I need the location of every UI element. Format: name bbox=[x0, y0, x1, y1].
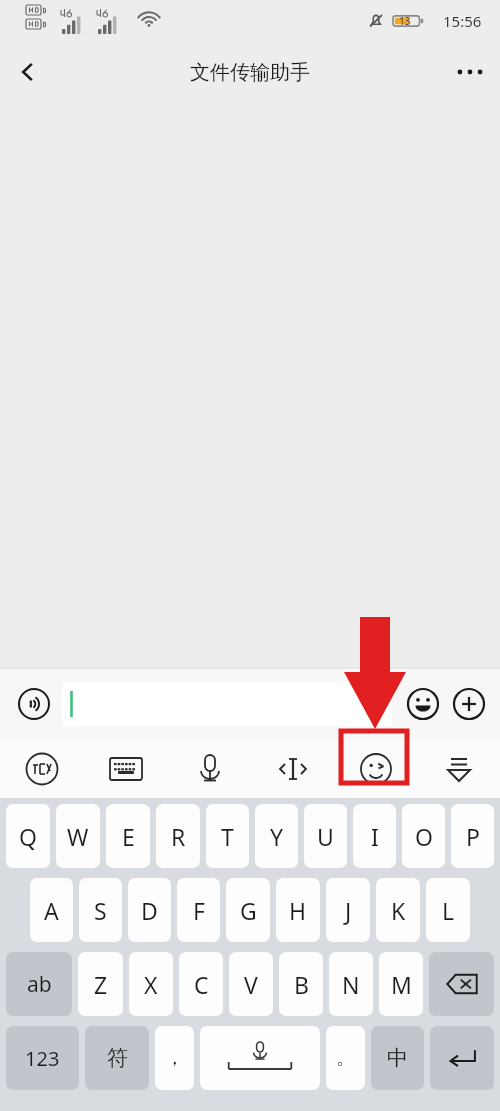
button[interactable]: Voice typing bbox=[168, 740, 251, 798]
button[interactable]: C bbox=[179, 952, 223, 1016]
staticText: X bbox=[144, 969, 158, 1000]
button[interactable]: U bbox=[304, 804, 347, 868]
staticText: J bbox=[345, 895, 352, 926]
button[interactable]: ab bbox=[6, 952, 72, 1016]
staticText: E bbox=[122, 821, 135, 852]
button[interactable]: E bbox=[106, 804, 150, 868]
staticText: T bbox=[221, 821, 234, 852]
button[interactable]: 中 bbox=[371, 1026, 424, 1090]
button[interactable]: W bbox=[56, 804, 100, 868]
button[interactable]: Input method bbox=[0, 740, 84, 798]
button[interactable] bbox=[62, 682, 392, 726]
button[interactable]: 。 bbox=[326, 1026, 365, 1090]
button[interactable]: Space bbox=[200, 1026, 320, 1090]
staticText: G bbox=[240, 895, 257, 926]
staticText: 中 bbox=[387, 1045, 408, 1071]
button[interactable]: I bbox=[353, 804, 396, 868]
staticText: Q bbox=[19, 821, 37, 852]
staticText: I bbox=[371, 821, 379, 852]
staticText: O bbox=[415, 821, 433, 852]
button[interactable]: T bbox=[206, 804, 249, 868]
button[interactable]: F bbox=[177, 878, 220, 942]
button[interactable]: ， bbox=[155, 1026, 194, 1090]
staticText: P bbox=[466, 821, 480, 852]
button[interactable]: More options bbox=[440, 42, 500, 102]
button[interactable]: 符 bbox=[85, 1026, 149, 1090]
button[interactable]: P bbox=[451, 804, 494, 868]
button[interactable]: Backspace bbox=[429, 952, 494, 1016]
button[interactable]: R bbox=[156, 804, 200, 868]
staticText: L bbox=[442, 895, 455, 926]
button[interactable]: Y bbox=[255, 804, 298, 868]
button[interactable]: D bbox=[128, 878, 171, 942]
button[interactable]: V bbox=[229, 952, 273, 1016]
staticText: ， bbox=[165, 1046, 184, 1070]
button[interactable]: 123 bbox=[6, 1026, 79, 1090]
staticText: 13 bbox=[399, 14, 411, 28]
button[interactable]: Q bbox=[6, 804, 50, 868]
staticText: S bbox=[94, 895, 107, 926]
button[interactable]: B bbox=[279, 952, 323, 1016]
staticText: 15:56 bbox=[443, 11, 482, 31]
staticText: R bbox=[171, 821, 186, 852]
staticText: F bbox=[193, 895, 205, 926]
staticText: 。 bbox=[336, 1046, 355, 1070]
button[interactable]: O bbox=[402, 804, 445, 868]
button[interactable]: Emoji panel bbox=[334, 740, 417, 798]
staticText: Y bbox=[270, 821, 284, 852]
staticText: ab bbox=[27, 970, 52, 999]
button[interactable]: Move cursor bbox=[251, 740, 334, 798]
staticText: 符 bbox=[107, 1045, 128, 1071]
button[interactable]: H bbox=[276, 878, 320, 942]
button[interactable]: K bbox=[376, 878, 420, 942]
button[interactable]: Z bbox=[78, 952, 123, 1016]
button[interactable]: S bbox=[79, 878, 122, 942]
button[interactable]: N bbox=[329, 952, 373, 1016]
button[interactable]: More functions bbox=[446, 681, 492, 727]
staticText: B bbox=[294, 969, 309, 1000]
button[interactable]: G bbox=[226, 878, 270, 942]
staticText: M bbox=[391, 969, 412, 1000]
staticText: D bbox=[141, 895, 158, 926]
staticText: U bbox=[317, 821, 334, 852]
staticText: H bbox=[289, 895, 307, 926]
staticText: V bbox=[244, 969, 258, 1000]
button[interactable]: Emoji bbox=[400, 681, 446, 727]
staticText: 123 bbox=[25, 1045, 60, 1072]
button[interactable]: Back bbox=[0, 44, 56, 100]
button[interactable]: M bbox=[379, 952, 423, 1016]
staticText: W bbox=[67, 821, 89, 852]
button[interactable]: Enter bbox=[430, 1026, 494, 1090]
button[interactable]: Hide keyboard bbox=[417, 740, 500, 798]
staticText: Z bbox=[94, 969, 108, 1000]
staticText: A bbox=[44, 895, 59, 926]
button[interactable]: Voice input bbox=[12, 682, 56, 726]
button[interactable]: A bbox=[30, 878, 73, 942]
staticText: N bbox=[342, 969, 360, 1000]
staticText: K bbox=[391, 895, 406, 926]
staticText: 文件传输助手 bbox=[190, 60, 310, 85]
button[interactable]: Keyboard layout bbox=[84, 740, 168, 798]
staticText: C bbox=[194, 969, 209, 1000]
button[interactable]: L bbox=[426, 878, 470, 942]
button[interactable]: J bbox=[326, 878, 370, 942]
button[interactable]: X bbox=[129, 952, 173, 1016]
